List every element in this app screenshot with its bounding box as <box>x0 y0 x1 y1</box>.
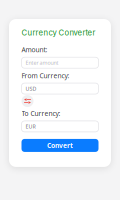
button[interactable]: EUR <box>21 121 98 132</box>
staticText: USD <box>25 85 36 92</box>
button[interactable]: Swap currencies <box>21 95 33 107</box>
staticText: To Currency: <box>21 109 60 118</box>
staticText: Convert <box>47 141 73 150</box>
button[interactable]: USD <box>21 83 98 94</box>
staticText: From Currency: <box>21 71 69 80</box>
staticText: EUR <box>25 123 35 130</box>
button[interactable]: Convert <box>21 139 98 152</box>
staticText: Enter amount <box>25 59 58 66</box>
staticText: Currency Converter <box>21 28 95 37</box>
button[interactable]: Enter amount <box>21 57 98 68</box>
staticText: Amount: <box>21 45 47 54</box>
